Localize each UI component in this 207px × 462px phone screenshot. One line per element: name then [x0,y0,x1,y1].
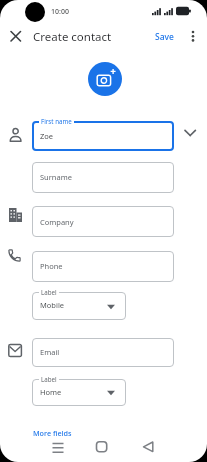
button[interactable] [181,124,199,142]
staticText: Mobile [40,300,65,310]
staticText: Surname [40,172,72,182]
staticText: First name [41,117,72,125]
button[interactable] [88,62,122,96]
button[interactable] [32,162,174,193]
button[interactable] [32,251,174,282]
button[interactable] [4,25,28,48]
staticText: 10:00 [51,7,69,17]
button[interactable] [32,292,126,320]
button[interactable] [32,206,174,237]
button[interactable] [136,436,160,458]
button[interactable]: Save [148,27,180,46]
button[interactable] [32,379,126,406]
staticText: Home [40,387,62,397]
staticText: Company [40,217,74,227]
staticText: Label [41,288,57,296]
button[interactable] [32,338,174,367]
staticText: Email [40,347,60,357]
staticText: Zoe [40,131,54,141]
staticText: Save [155,31,174,43]
staticText: More fields [33,428,72,438]
button[interactable] [46,436,70,458]
button[interactable] [90,436,114,458]
button[interactable] [186,25,200,48]
button[interactable]: More fields [30,425,80,441]
staticText: Create contact [33,29,112,45]
button[interactable] [32,121,174,151]
staticText: Phone [40,261,63,271]
staticText: Label [41,375,57,383]
